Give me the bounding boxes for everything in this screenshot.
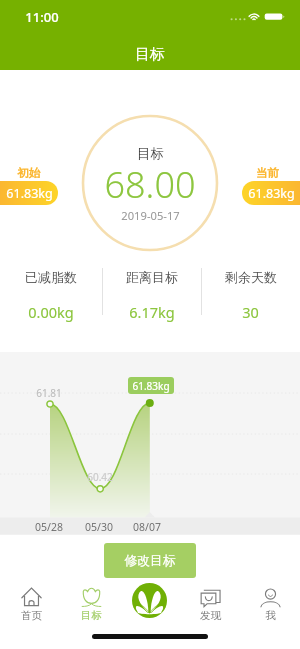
staticText: 08/07 <box>133 520 161 534</box>
staticText: 剩余天数 <box>225 269 277 285</box>
button[interactable]: 修改目标 <box>104 543 196 578</box>
staticText: 目标 <box>137 145 164 162</box>
staticText: 05/30 <box>85 520 113 534</box>
button[interactable]: Record <box>132 583 167 618</box>
button[interactable]: 61.83kg <box>0 181 58 205</box>
staticText: 初始 <box>17 166 40 180</box>
staticText: 距离目标 <box>126 269 178 285</box>
staticText: 修改目标 <box>124 553 176 569</box>
staticText: 68.00 <box>104 160 196 209</box>
button[interactable]: 我 <box>240 580 300 622</box>
staticText: 已减脂数 <box>25 269 77 285</box>
staticText: 61.81 <box>36 386 62 400</box>
staticText: 发现 <box>200 609 221 622</box>
staticText: 0.00kg <box>28 302 74 322</box>
staticText: 05/28 <box>35 520 63 534</box>
staticText: 61.83kg <box>248 185 295 202</box>
button[interactable]: 发现 <box>180 580 240 622</box>
staticText: 30 <box>242 302 259 322</box>
staticText: 11:00 <box>25 8 59 26</box>
button[interactable]: 61.83kg <box>242 181 300 205</box>
button[interactable]: 目标 <box>61 580 121 622</box>
staticText: 61.83kg <box>6 185 53 202</box>
staticText: 我 <box>265 609 276 622</box>
staticText: 目标 <box>135 45 165 64</box>
staticText: 当前 <box>256 166 279 180</box>
button[interactable]: 距离目标 <box>102 262 201 322</box>
staticText: 目标 <box>81 609 102 622</box>
staticText: 61.83kg <box>132 379 170 393</box>
staticText: 首页 <box>21 609 42 622</box>
button[interactable]: 61.83kg <box>128 377 174 394</box>
button[interactable]: 剩余天数 <box>201 262 300 322</box>
button[interactable]: 已减脂数 <box>0 262 102 322</box>
staticText: 2019-05-17 <box>121 208 180 223</box>
button[interactable]: 首页 <box>1 580 61 622</box>
staticText: 6.17kg <box>129 302 175 322</box>
staticText: 60.42 <box>87 470 113 484</box>
